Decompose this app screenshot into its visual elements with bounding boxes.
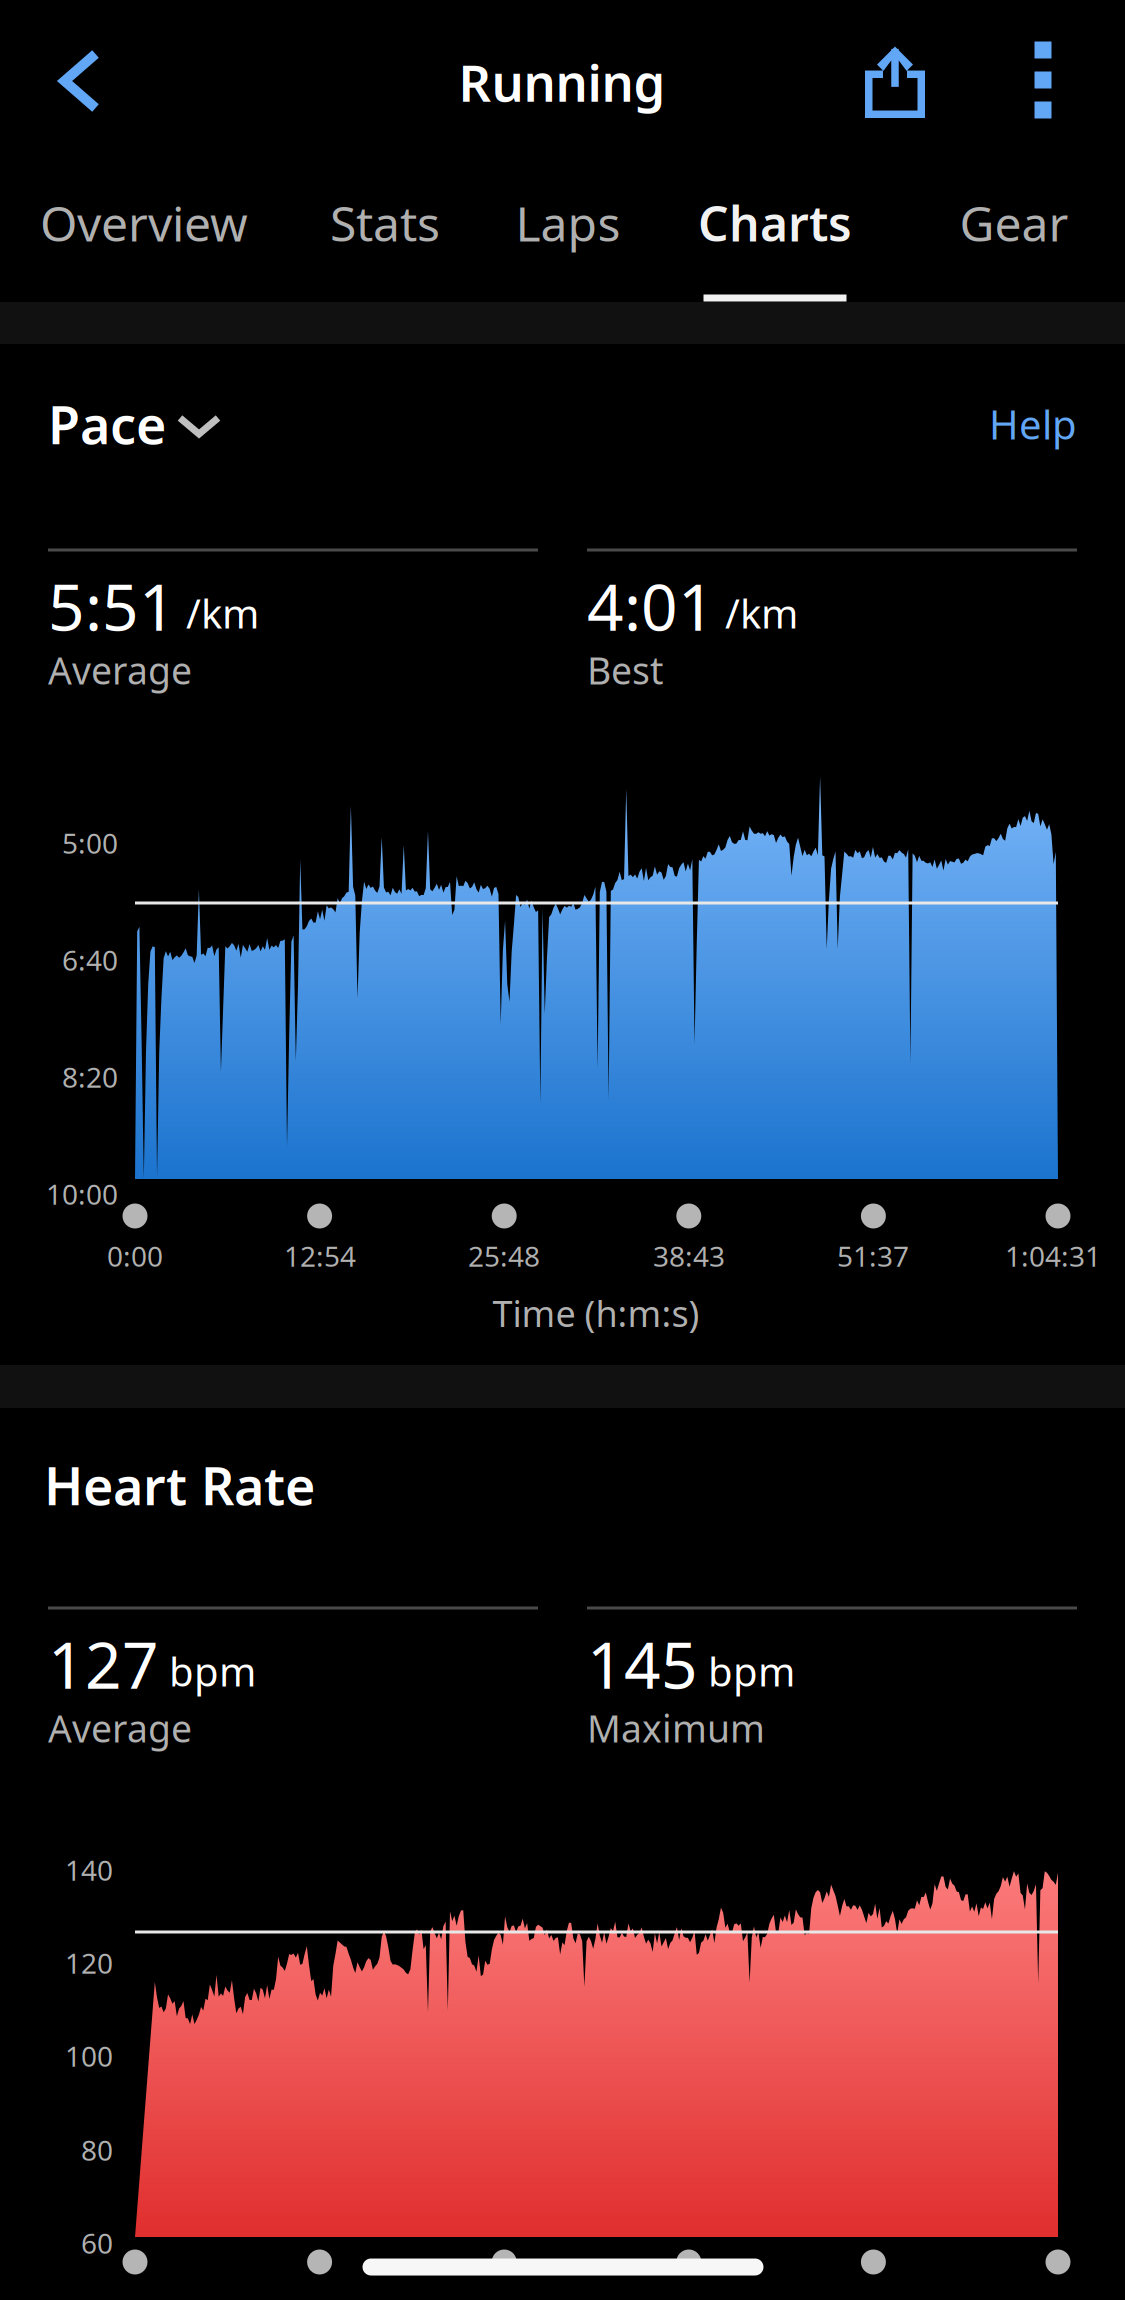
staticText: Gear xyxy=(959,191,1068,255)
staticText: bpm xyxy=(698,1644,795,1697)
staticText: 60 xyxy=(81,2224,113,2262)
staticText: 100 xyxy=(65,2037,113,2075)
button[interactable]: Share xyxy=(830,15,960,145)
staticText: 127 xyxy=(48,1621,159,1706)
staticText: Pace xyxy=(48,389,166,459)
button[interactable]: Laps xyxy=(433,158,703,288)
staticText: 1:04:31 xyxy=(1005,1237,1101,1275)
staticText: Running xyxy=(458,48,665,116)
staticText: 145 xyxy=(587,1621,698,1706)
staticText: Best xyxy=(587,645,663,695)
staticText: 10:00 xyxy=(46,1175,118,1213)
staticText: Average xyxy=(48,645,192,695)
button[interactable]: Stats xyxy=(250,158,520,288)
staticText: Maximum xyxy=(587,1703,765,1753)
staticText: 0:00 xyxy=(107,1237,163,1275)
staticText: Stats xyxy=(330,191,440,255)
staticText: 8:20 xyxy=(62,1058,118,1096)
staticText: Average xyxy=(48,1703,192,1753)
staticText: Help xyxy=(989,397,1077,450)
button[interactable]: Charts xyxy=(640,158,910,288)
staticText: 140 xyxy=(65,1851,113,1889)
button[interactable]: Overview xyxy=(9,158,279,288)
button[interactable]: Back xyxy=(15,16,145,146)
staticText: Laps xyxy=(515,191,620,255)
staticText: bpm xyxy=(159,1644,256,1697)
staticText: /km xyxy=(176,586,259,639)
button[interactable]: Help xyxy=(917,374,1077,474)
button[interactable]: Gear xyxy=(879,158,1125,288)
staticText: /km xyxy=(715,586,798,639)
staticText: 5:51 xyxy=(48,563,176,648)
staticText: 51:37 xyxy=(837,1237,909,1275)
staticText: Overview xyxy=(40,191,248,255)
staticText: 5:00 xyxy=(62,824,118,862)
staticText: 120 xyxy=(65,1944,113,1982)
staticText: 25:48 xyxy=(468,1237,540,1275)
staticText: 4:01 xyxy=(587,563,715,648)
staticText: 80 xyxy=(81,2131,113,2169)
staticText: Heart Rate xyxy=(44,1450,315,1520)
button[interactable]: Pace xyxy=(48,369,388,479)
staticText: 6:40 xyxy=(62,941,118,979)
staticText: Time (h:m:s) xyxy=(492,1289,699,1337)
staticText: Charts xyxy=(698,191,852,255)
staticText: 12:54 xyxy=(284,1237,356,1275)
button[interactable]: More options xyxy=(988,15,1098,145)
staticText: 38:43 xyxy=(653,1237,725,1275)
